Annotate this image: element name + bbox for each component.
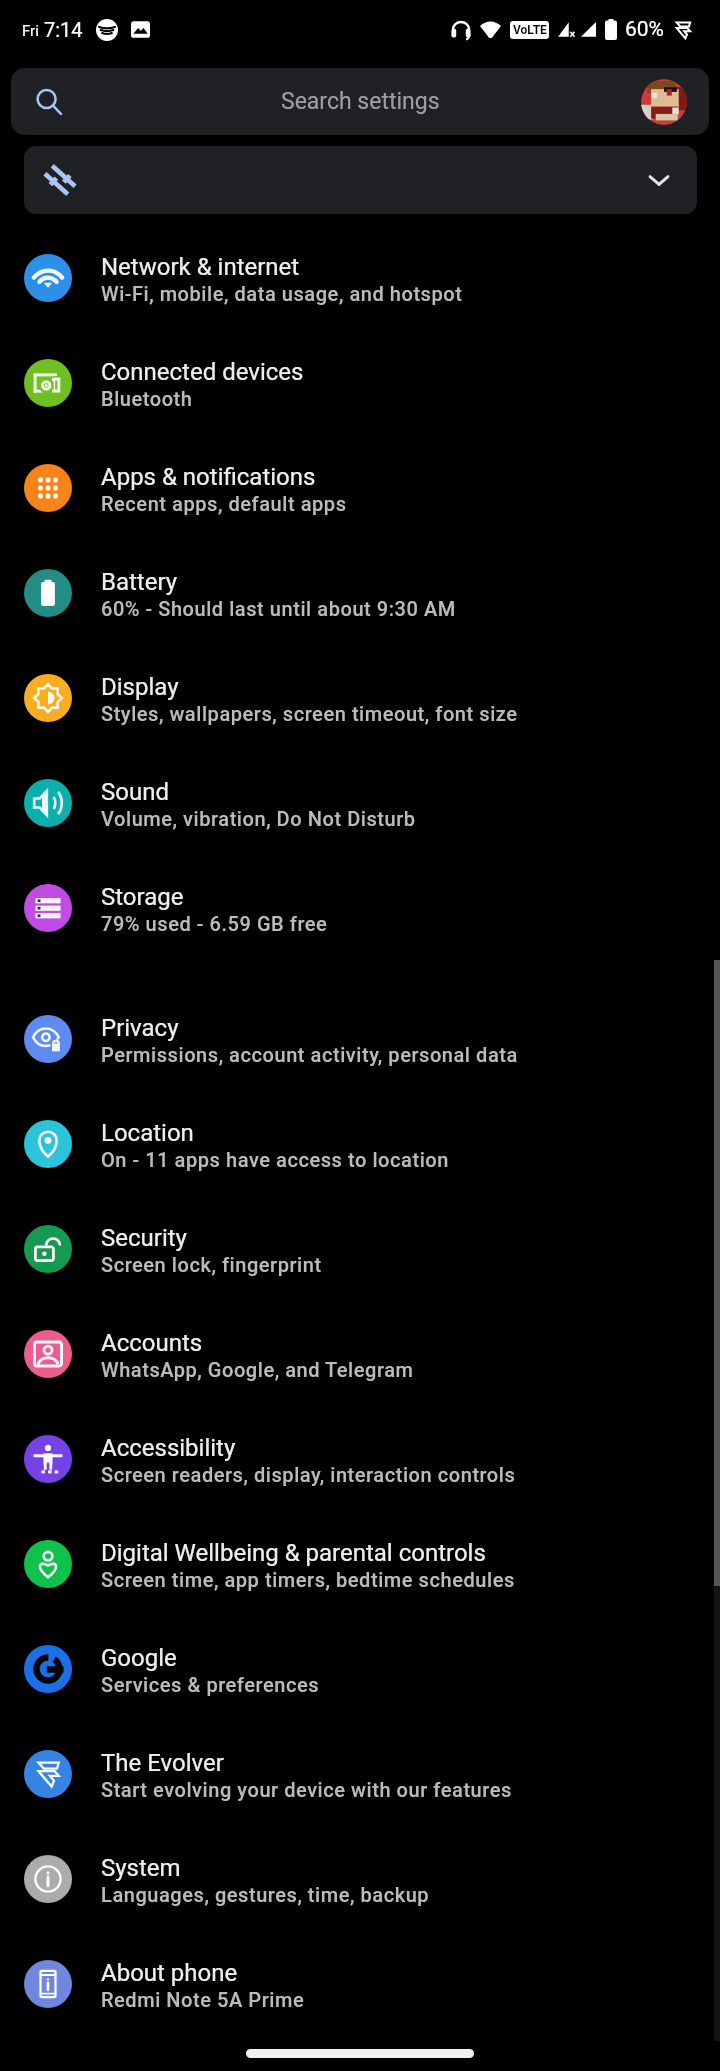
staticText: Volume, vibration, Do Not Disturb xyxy=(101,807,416,830)
button[interactable]: Display xyxy=(0,645,720,750)
staticText: Search settings xyxy=(281,88,440,115)
staticText: 60% - Should last until about 9:30 AM xyxy=(101,597,456,620)
staticText: Google xyxy=(101,1644,177,1672)
staticText: Privacy xyxy=(101,1014,179,1042)
staticText: On - 11 apps have access to location xyxy=(101,1148,449,1171)
staticText: Accessibility xyxy=(101,1434,236,1462)
staticText: Fri xyxy=(22,22,39,40)
button[interactable]: Security xyxy=(0,1196,720,1301)
staticText: Display xyxy=(101,673,179,701)
button[interactable]: Digital Wellbeing xyxy=(0,1511,720,1616)
button[interactable]: System xyxy=(0,1826,720,1931)
button[interactable]: Battery xyxy=(0,540,720,645)
button[interactable]: Sound xyxy=(0,750,720,855)
staticText: VoLTE xyxy=(513,23,547,37)
staticText: Bluetooth xyxy=(101,387,193,410)
other: Search xyxy=(34,87,64,117)
staticText: WhatsApp, Google, and Telegram xyxy=(101,1358,414,1381)
staticText: Digital Wellbeing & parental controls xyxy=(101,1539,486,1567)
button[interactable]: Suggestions xyxy=(24,146,697,214)
staticText: Sound xyxy=(101,778,169,806)
staticText: Connected devices xyxy=(101,358,304,386)
button[interactable]: Storage xyxy=(0,855,720,960)
staticText: About phone xyxy=(101,1959,238,1987)
staticText: Start evolving your device with our feat… xyxy=(101,1778,512,1801)
staticText: 79% used - 6.59 GB free xyxy=(101,912,328,935)
staticText: Screen readers, display, interaction con… xyxy=(101,1463,516,1486)
staticText: Redmi Note 5A Prime xyxy=(101,1988,305,2011)
button[interactable]: Accessibility xyxy=(0,1406,720,1511)
staticText: Security xyxy=(101,1224,187,1252)
button[interactable]: The Evolver xyxy=(0,1721,720,1826)
button[interactable]: Apps & notifications xyxy=(0,435,720,540)
staticText: System xyxy=(101,1854,181,1882)
staticText: Languages, gestures, time, backup xyxy=(101,1883,430,1906)
button[interactable]: Location xyxy=(0,1091,720,1196)
button[interactable]: Privacy xyxy=(0,986,720,1091)
staticText: Screen time, app timers, bedtime schedul… xyxy=(101,1568,515,1591)
staticText: Permissions, account activity, personal … xyxy=(101,1043,518,1066)
button[interactable]: Connected devices xyxy=(0,330,720,435)
staticText: Services & preferences xyxy=(101,1673,320,1696)
staticText: Recent apps, default apps xyxy=(101,492,347,515)
staticText: Battery xyxy=(101,568,178,596)
button[interactable]: Account xyxy=(641,79,687,125)
staticText: Styles, wallpapers, screen timeout, font… xyxy=(101,702,518,725)
staticText: Screen lock, fingerprint xyxy=(101,1253,322,1276)
staticText: Location xyxy=(101,1119,194,1147)
staticText: 7:14 xyxy=(44,18,83,41)
button[interactable]: Accounts xyxy=(0,1301,720,1406)
staticText: Storage xyxy=(101,883,184,911)
staticText: The Evolver xyxy=(101,1749,224,1777)
button[interactable]: Google xyxy=(0,1616,720,1721)
staticText: Accounts xyxy=(101,1329,203,1357)
button[interactable]: Search xyxy=(11,68,709,135)
staticText: Network & internet xyxy=(101,253,300,281)
button[interactable]: About phone xyxy=(0,1931,720,2036)
staticText: 60% xyxy=(625,17,664,42)
staticText: Wi-Fi, mobile, data usage, and hotspot xyxy=(101,282,463,305)
staticText: Apps & notifications xyxy=(101,463,316,491)
button[interactable]: Network & internet xyxy=(0,225,720,330)
